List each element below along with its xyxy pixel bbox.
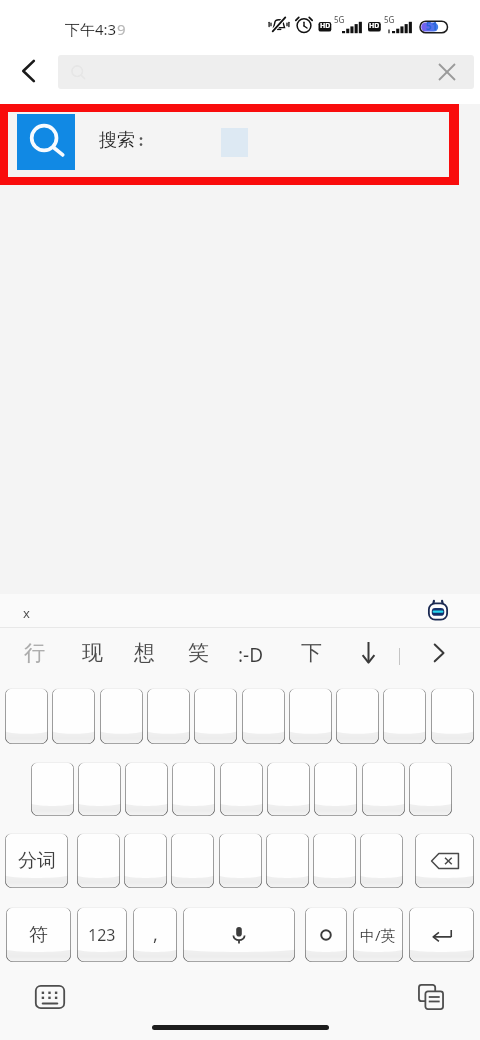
button[interactable]: Key [313,833,356,888]
staticText: 搜索 [99,129,135,152]
button[interactable]: Backspace [415,833,474,888]
button[interactable]: 想 [134,640,155,666]
button[interactable]: Switch keyboard [27,978,73,1016]
button[interactable]: More candidates [354,638,382,666]
button[interactable]: 分词 [5,833,68,888]
button[interactable]: 符 [6,907,71,962]
button[interactable]: Clear [435,60,459,84]
button[interactable]: Key [314,762,357,816]
button[interactable]: Key [77,833,120,888]
button[interactable]: 123 [77,907,127,962]
staticText: 51 [426,19,438,33]
button[interactable]: 搜索 [8,112,449,177]
button[interactable]: Key [362,762,405,816]
staticText: x [23,604,30,622]
button[interactable]: Key [100,688,143,744]
button[interactable]: 下 [301,640,322,666]
button[interactable]: :-D [238,642,264,668]
button[interactable]: 现 [82,640,103,666]
button[interactable]: Key [124,833,167,888]
staticText: HD [320,21,331,31]
staticText: 分词 [18,849,56,873]
button[interactable]: Key [431,688,474,744]
button[interactable]: Key [409,762,452,816]
button[interactable]: Key [336,688,379,744]
button[interactable]: Key [383,688,426,744]
button[interactable]: Key [242,688,285,744]
staticText: 下午4:3 [65,19,117,39]
button[interactable]: Key [360,833,403,888]
button[interactable]: Key [171,833,214,888]
button[interactable]: Key [267,762,310,816]
button[interactable]: Enter [409,907,474,962]
button[interactable]: Key [289,688,332,744]
button[interactable]: Back [8,50,50,92]
button[interactable]: Key [219,833,262,888]
staticText: 5G [384,14,395,25]
button[interactable]: Clear [58,55,474,89]
button[interactable]: Period [305,907,347,962]
button[interactable]: 行 [24,640,45,666]
button[interactable]: Key [125,762,168,816]
button[interactable]: Voice input [183,907,295,962]
staticText: 中/英 [360,925,396,945]
button[interactable]: AI assistant [424,597,452,625]
button[interactable]: Key [266,833,309,888]
button[interactable]: Clipboard [411,978,451,1016]
button[interactable]: Key [194,688,237,744]
button[interactable]: Key [52,688,95,744]
button[interactable]: Key [220,762,263,816]
button[interactable]: , [133,907,177,962]
staticText: HD [369,21,380,31]
staticText: 符 [29,923,48,947]
button[interactable]: Key [78,762,121,816]
staticText: 9 [117,19,126,39]
staticText: 123 [88,924,116,946]
button[interactable]: 中/英 [353,907,403,962]
button[interactable]: Key [5,688,48,744]
button[interactable]: Key [31,762,74,816]
button[interactable]: Key [172,762,215,816]
button[interactable]: 笑 [188,640,209,666]
button[interactable]: Key [147,688,190,744]
staticText: 5G [334,14,345,25]
button[interactable]: Next page [424,638,453,667]
staticText: , [153,922,158,947]
